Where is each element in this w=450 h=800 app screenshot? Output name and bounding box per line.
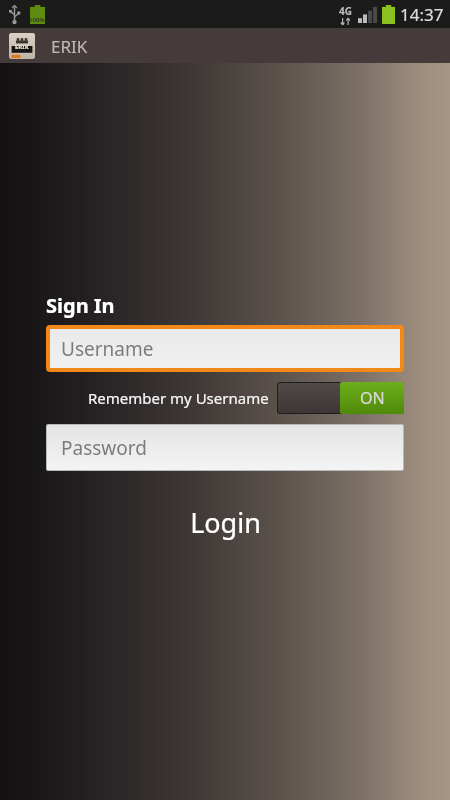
staticText: Login <box>190 504 261 541</box>
button[interactable]: Username <box>50 329 400 368</box>
staticText: Remember my Username <box>88 388 269 408</box>
staticText: Username <box>61 336 154 362</box>
staticText: ERIK <box>51 35 88 58</box>
staticText: 14:37 <box>400 3 444 26</box>
button[interactable]: Password <box>47 425 403 470</box>
staticText: ON <box>360 387 385 409</box>
staticText: 100% <box>29 16 45 24</box>
staticText: Sign In <box>46 292 115 319</box>
staticText: 4G <box>339 4 352 18</box>
staticText: Password <box>61 435 147 461</box>
staticText: ERIK <box>15 43 29 51</box>
button[interactable]: Login <box>46 499 404 545</box>
button[interactable]: Remember my Username toggle, on <box>277 382 404 414</box>
